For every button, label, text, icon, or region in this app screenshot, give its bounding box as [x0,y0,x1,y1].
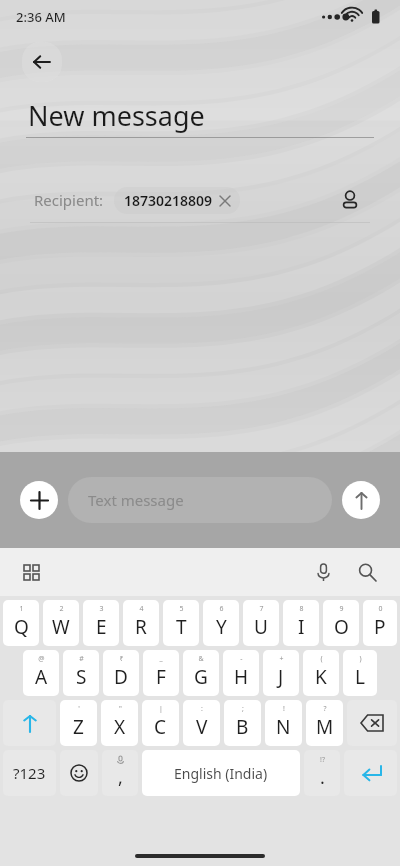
button[interactable]: Text message [68,477,332,523]
button[interactable]: 6 [203,600,239,646]
staticText: P [374,614,386,640]
button[interactable]: ; [224,700,261,746]
staticText: K [315,664,327,690]
button[interactable]: !? [304,750,340,796]
button[interactable]: Enter [344,750,397,796]
staticText: 6 [219,604,224,614]
staticText: S [76,664,87,690]
staticText: F [156,664,166,690]
button[interactable]: ! [265,700,302,746]
button[interactable]: Choose contact [334,184,366,216]
staticText: # [79,654,84,664]
button[interactable]: 0 [363,600,397,646]
staticText: " [119,704,122,714]
staticText: C [154,714,167,740]
staticText: V [196,714,208,740]
staticText: 7 [259,604,264,614]
button[interactable]: 3 [83,600,119,646]
staticText: A [35,664,48,690]
button[interactable]: | [142,700,179,746]
staticText: 0 [378,604,383,614]
staticText: X [114,714,126,740]
button[interactable]: # [63,650,99,696]
staticText: ? [323,704,327,714]
staticText: Recipient: [34,190,104,210]
button[interactable]: ' [60,700,97,746]
staticText: Z [73,714,84,740]
button[interactable]: Voice input [306,555,340,589]
staticText: N [276,714,291,740]
staticText: ! [283,704,285,714]
staticText: I [298,614,305,640]
button[interactable]: Emoji [60,750,98,796]
button[interactable]: Back [22,42,62,82]
staticText: 2:36 AM [16,8,66,26]
staticText: L [355,664,365,690]
staticText: . [320,765,325,790]
staticText: 5 [179,604,184,614]
button[interactable]: ?123 [3,750,56,796]
button[interactable]: Search [350,555,384,589]
button[interactable]: @ [23,650,59,696]
staticText: + [279,654,284,664]
staticText: , [118,765,123,790]
staticText: D [114,664,128,690]
staticText: _ [159,654,163,664]
staticText: Y [216,614,227,640]
staticText: G [194,664,208,690]
button[interactable]: 8 [283,600,319,646]
staticText: O [334,614,349,640]
staticText: 2 [59,604,64,614]
button[interactable]: & [183,650,219,696]
staticText: ₹ [119,654,124,664]
staticText: & [198,654,204,664]
button[interactable]: _ [143,650,179,696]
button[interactable]: ( [303,650,339,696]
button[interactable]: Shift [3,700,56,746]
staticText: B [236,714,249,740]
staticText: New message [28,97,205,134]
button[interactable]: 9 [323,600,359,646]
button[interactable]: 1 [3,600,39,646]
staticText: !? [320,755,325,765]
button[interactable]: Backspace [347,700,397,746]
staticText: 3 [99,604,104,614]
staticText: U [254,614,268,640]
staticText: 8 [299,604,304,614]
staticText: @ [38,654,45,664]
staticText: ?123 [13,763,46,783]
staticText: M [316,714,334,740]
staticText: 1 [19,604,24,614]
button[interactable]: 2 [43,600,79,646]
button[interactable]: , [102,750,138,796]
button[interactable]: + [263,650,299,696]
button[interactable]: Send [342,481,380,519]
button[interactable]: : [183,700,220,746]
staticText: ) [359,654,362,664]
staticText: : [201,704,203,714]
staticText: Text message [88,490,184,510]
staticText: T [176,614,187,640]
button[interactable]: - [223,650,259,696]
staticText: ( [320,654,323,664]
button[interactable]: " [101,700,138,746]
button[interactable]: 5 [163,600,199,646]
button[interactable]: Add attachment [20,481,58,519]
staticText: 9 [339,604,344,614]
button[interactable]: 7 [243,600,279,646]
staticText: 4 [139,604,144,614]
staticText: H [234,664,249,690]
button[interactable]: 18730218809 [114,187,240,214]
staticText: ; [242,704,244,714]
staticText: 18730218809 [124,191,213,210]
staticText: Q [14,614,29,640]
staticText: English (India) [174,764,268,783]
button[interactable]: Toolbar [16,557,46,587]
button[interactable]: ? [306,700,343,746]
button[interactable]: ₹ [103,650,139,696]
staticText: | [159,704,163,714]
button[interactable]: English (India) [142,750,300,796]
staticText: W [52,614,70,640]
button[interactable]: 4 [123,600,159,646]
button[interactable]: ) [343,650,377,696]
